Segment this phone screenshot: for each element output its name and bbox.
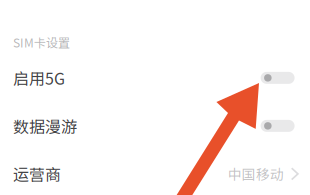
staticText: 中国移动 bbox=[228, 164, 284, 184]
button[interactable]: 数据漫游 bbox=[0, 102, 310, 150]
staticText: 启用5G bbox=[13, 66, 65, 89]
button[interactable]: 启用5G bbox=[0, 54, 310, 102]
button[interactable]: 运营商 bbox=[0, 150, 310, 195]
staticText: 数据漫游 bbox=[13, 114, 77, 137]
staticText: SIM卡设置 bbox=[13, 33, 70, 51]
staticText: 运营商 bbox=[13, 162, 61, 185]
